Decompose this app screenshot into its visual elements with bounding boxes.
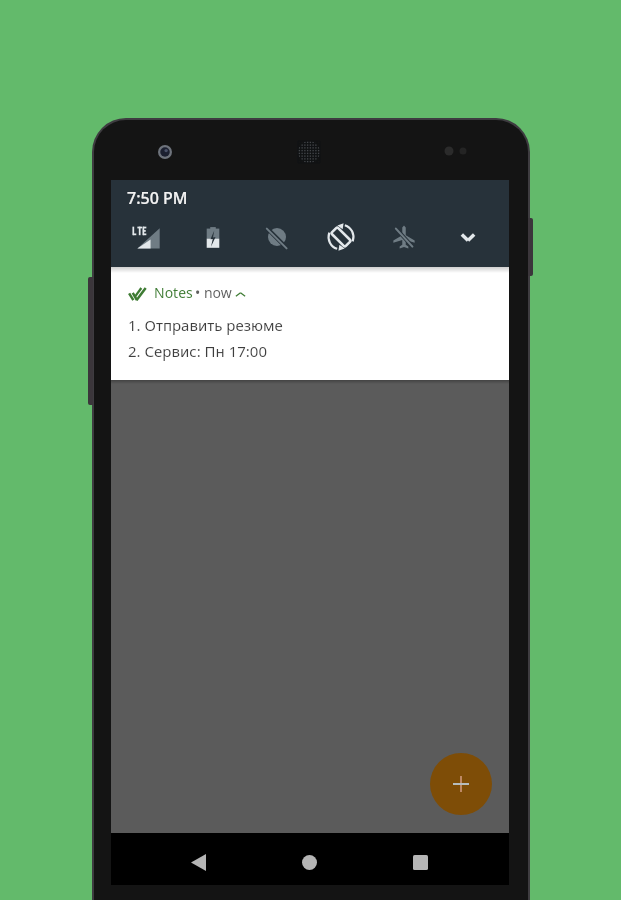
- staticText: 7:50 PM: [127, 187, 188, 209]
- button[interactable]: Battery charging: [182, 209, 244, 265]
- button[interactable]: Airplane mode: [373, 209, 435, 265]
- button[interactable]: Recent apps: [394, 836, 446, 888]
- staticText: 2. Сервис: Пн 17:00: [128, 341, 268, 361]
- button[interactable]: Back: [172, 836, 224, 888]
- button[interactable]: Home: [283, 836, 335, 888]
- staticText: Notes: [154, 283, 193, 302]
- button[interactable]: Do not disturb: [246, 209, 308, 265]
- button[interactable]: LTE signal: [114, 209, 176, 265]
- button[interactable]: Auto rotate: [310, 209, 372, 265]
- staticText: 1. Отправить резюме: [128, 315, 283, 335]
- staticText: • now: [195, 283, 232, 302]
- button[interactable]: Expand quick settings: [437, 209, 499, 265]
- button[interactable]: Add note: [430, 753, 492, 815]
- button[interactable]: Notes: [111, 267, 509, 380]
